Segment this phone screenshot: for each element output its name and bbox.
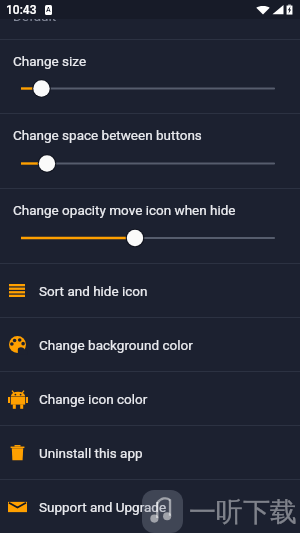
button[interactable]: Change opacity move icon when hide (0, 226, 300, 250)
button[interactable]: Change size (0, 77, 300, 101)
staticText: Default (13, 8, 57, 22)
button[interactable]: Change space between buttons (0, 114, 300, 188)
button[interactable]: Change opacity move icon when hide (0, 189, 300, 263)
button[interactable]: Uninstall this app (0, 426, 300, 479)
staticText: Uninstall this app (39, 445, 143, 461)
staticText: Change size (13, 53, 87, 69)
staticText: Sort and hide icon (39, 283, 148, 299)
button[interactable]: Change space between buttons (0, 152, 300, 176)
button[interactable]: Sort and hide icon (0, 264, 300, 317)
staticText: Change space between buttons (13, 127, 202, 143)
button[interactable]: Change background color (0, 318, 300, 371)
button[interactable]: Support and Upgrade (0, 480, 300, 533)
staticText: 一听下载 (189, 495, 297, 529)
button[interactable]: Change size (0, 40, 300, 113)
staticText: Support and Upgrade (39, 499, 167, 515)
staticText: Change icon color (39, 391, 148, 407)
button[interactable]: Default (0, 0, 300, 39)
staticText: A (46, 6, 51, 14)
staticText: Change background color (39, 337, 193, 353)
button[interactable]: Change icon color (0, 372, 300, 425)
staticText: 10:43 (6, 3, 37, 17)
staticText: Change opacity move icon when hide (13, 202, 236, 218)
